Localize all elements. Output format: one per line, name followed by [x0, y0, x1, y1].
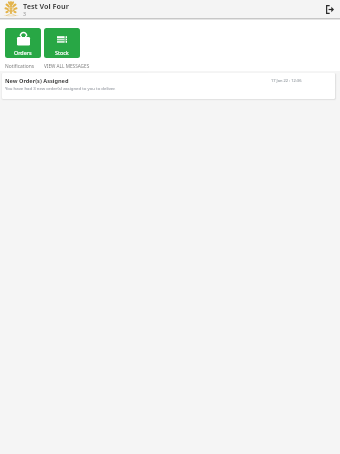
button[interactable]: New Order(s) Assigned — [2, 73, 335, 99]
button[interactable]: Stock — [44, 28, 80, 58]
staticText: Test Vol Four — [23, 1, 69, 11]
staticText: Orders — [14, 49, 32, 56]
staticText: Stock — [55, 49, 69, 56]
staticText: VIEW ALL MESSAGES — [44, 63, 90, 69]
staticText: You have had 3 new order(s) assigned to … — [5, 85, 116, 91]
staticText: 17 Jan 22 : 12:36 — [271, 78, 302, 83]
button[interactable]: Logout — [322, 1, 336, 17]
staticText: New Order(s) Assigned — [5, 77, 69, 85]
staticText: 3 — [23, 10, 26, 17]
staticText: Notifications — [5, 63, 35, 70]
button[interactable]: Orders — [5, 28, 41, 58]
